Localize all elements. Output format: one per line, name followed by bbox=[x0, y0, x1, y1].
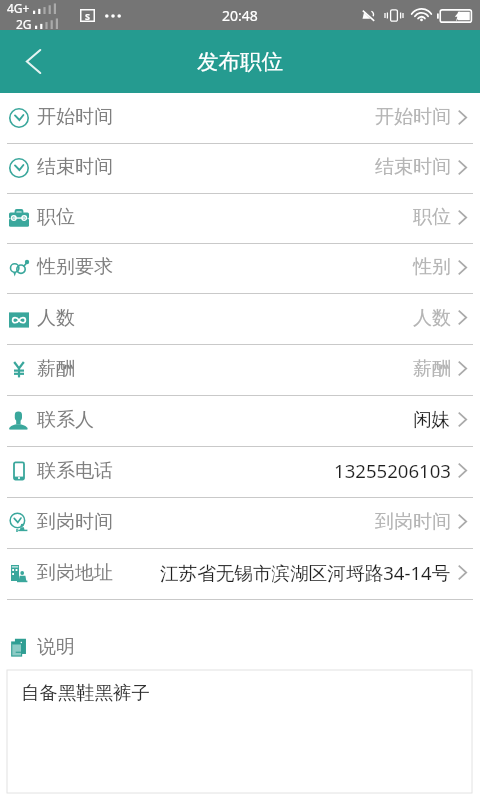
button[interactable]: 结束时间 bbox=[0, 144, 480, 194]
staticText: 开始时间 bbox=[37, 105, 113, 129]
staticText: 4G+ bbox=[7, 0, 30, 16]
button[interactable]: 开始时间 bbox=[0, 94, 480, 144]
button[interactable]: 人数 bbox=[0, 294, 480, 345]
staticText: 薪酬 bbox=[37, 357, 75, 381]
button[interactable]: 到岗时间 bbox=[0, 498, 480, 549]
staticText: 职位 bbox=[37, 205, 75, 229]
staticText: 人数 bbox=[413, 306, 451, 330]
button[interactable]: 联系人 bbox=[0, 396, 480, 447]
staticText: 结束时间 bbox=[375, 155, 451, 179]
staticText: 开始时间 bbox=[375, 105, 451, 129]
staticText: 自备黑鞋黑裤子 bbox=[21, 681, 150, 704]
staticText: 到岗时间 bbox=[375, 510, 451, 534]
button[interactable]: 职位 bbox=[0, 194, 480, 244]
staticText: 13255206103 bbox=[334, 458, 451, 483]
staticText: 性别要求 bbox=[37, 255, 113, 279]
button[interactable]: 到岗地址 bbox=[0, 549, 480, 600]
staticText: 到岗时间 bbox=[37, 510, 113, 534]
staticText: S bbox=[85, 10, 90, 22]
button[interactable]: 性别要求 bbox=[0, 244, 480, 294]
staticText: 人数 bbox=[37, 306, 75, 330]
staticText: 结束时间 bbox=[37, 155, 113, 179]
staticText: 性别 bbox=[413, 255, 451, 279]
button[interactable]: Back bbox=[0, 30, 56, 93]
staticText: 江苏省无锡市滨湖区河埒路34-14号 bbox=[160, 560, 451, 585]
staticText: 2G bbox=[16, 16, 32, 30]
staticText: 联系电话 bbox=[37, 459, 113, 483]
staticText: 发布职位 bbox=[197, 48, 283, 75]
staticText: 薪酬 bbox=[413, 357, 451, 381]
button[interactable]: 联系电话 bbox=[0, 447, 480, 498]
staticText: 到岗地址 bbox=[37, 561, 113, 585]
staticText: 说明 bbox=[37, 635, 75, 659]
staticText: 联系人 bbox=[37, 408, 94, 432]
button[interactable]: 薪酬 bbox=[0, 345, 480, 396]
staticText: 职位 bbox=[413, 205, 451, 229]
staticText: 闲妹 bbox=[413, 408, 451, 431]
staticText: 20:48 bbox=[222, 6, 258, 25]
